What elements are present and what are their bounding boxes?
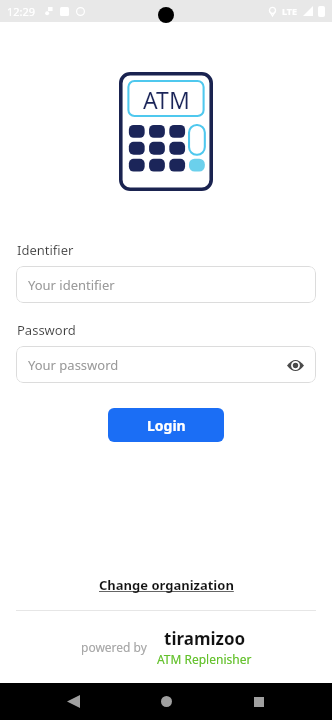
button[interactable]: Login — [108, 408, 224, 442]
button[interactable]: Back — [53, 683, 93, 720]
staticText: ATM Replenisher — [157, 651, 252, 667]
staticText: tiramizoo — [164, 627, 246, 650]
staticText: Change organization — [99, 576, 234, 594]
staticText: Password — [17, 321, 76, 339]
button[interactable]: Home — [146, 683, 186, 720]
button[interactable]: Your identifier — [16, 266, 316, 303]
button[interactable]: Recents — [239, 683, 279, 720]
staticText: Your identifier — [28, 276, 115, 294]
staticText: powered by — [81, 639, 147, 655]
button[interactable]: Your password — [16, 346, 316, 383]
button[interactable]: Show password — [282, 352, 308, 378]
staticText: 12:29 — [7, 4, 36, 19]
staticText: Your password — [28, 356, 119, 374]
staticText: Login — [147, 416, 186, 435]
button[interactable]: Change organization — [93, 572, 240, 598]
staticText: ATM — [143, 84, 190, 115]
staticText: Identifier — [17, 241, 74, 259]
staticText: LTE — [282, 5, 298, 17]
